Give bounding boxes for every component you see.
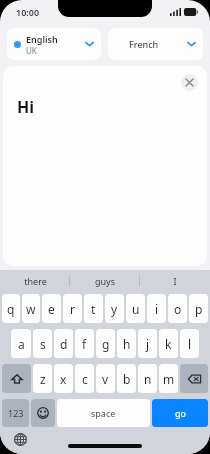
staticText: s	[40, 336, 46, 352]
button[interactable]: v	[96, 364, 115, 393]
staticText: k	[165, 336, 172, 352]
staticText: there	[24, 275, 47, 287]
button[interactable]: r	[63, 294, 82, 323]
staticText: v	[102, 371, 109, 387]
staticText: 10:00	[16, 6, 40, 18]
staticText: English	[26, 33, 58, 45]
staticText: g	[102, 336, 110, 352]
button[interactable]: English	[7, 28, 101, 60]
button[interactable]: i	[147, 294, 166, 323]
staticText: x	[60, 371, 67, 387]
staticText: a	[18, 336, 25, 352]
staticText: q	[7, 301, 15, 317]
staticText: c	[82, 371, 88, 387]
button[interactable]: French	[108, 28, 203, 60]
button[interactable]: w	[22, 294, 40, 323]
button[interactable]: n	[138, 364, 157, 393]
button[interactable]: I	[140, 270, 210, 291]
staticText: e	[48, 301, 55, 317]
staticText: l	[188, 336, 192, 352]
staticText: w	[26, 301, 36, 317]
staticText: n	[144, 371, 152, 387]
button[interactable]: z	[33, 364, 52, 393]
button[interactable]: g	[96, 329, 115, 358]
staticText: go	[175, 407, 186, 419]
button[interactable]: b	[117, 364, 136, 393]
staticText: z	[40, 371, 46, 387]
staticText: j	[146, 336, 150, 352]
staticText: p	[195, 301, 203, 317]
staticText: guys	[95, 275, 115, 287]
button[interactable]: space	[57, 399, 150, 427]
button[interactable]: u	[126, 294, 145, 323]
staticText: t	[91, 301, 96, 317]
staticText: u	[132, 301, 140, 317]
button[interactable]: Close	[181, 74, 198, 91]
staticText: French	[129, 38, 159, 50]
button[interactable]: Backspace	[180, 364, 208, 393]
button[interactable]: x	[54, 364, 73, 393]
button[interactable]: go	[152, 399, 208, 427]
button[interactable]: Emoji	[31, 399, 55, 427]
button[interactable]: k	[159, 329, 178, 358]
button[interactable]: c	[75, 364, 94, 393]
staticText: Hi	[17, 96, 35, 118]
staticText: space	[91, 407, 116, 419]
staticText: UK	[26, 45, 37, 56]
button[interactable]: j	[138, 329, 157, 358]
button[interactable]: e	[42, 294, 61, 323]
staticText: h	[123, 336, 131, 352]
staticText: m	[163, 371, 175, 387]
staticText: o	[174, 301, 182, 317]
button[interactable]: Shift	[2, 364, 31, 393]
button[interactable]: d	[54, 329, 73, 358]
button[interactable]: guys	[70, 270, 140, 291]
button[interactable]: h	[117, 329, 136, 358]
staticText: 123	[8, 407, 24, 419]
button[interactable]: Change keyboard language	[9, 428, 31, 450]
staticText: y	[111, 301, 118, 317]
button[interactable]: y	[105, 294, 124, 323]
staticText: d	[60, 336, 68, 352]
button[interactable]: t	[84, 294, 103, 323]
button[interactable]: a	[11, 329, 31, 358]
button[interactable]: p	[189, 294, 208, 323]
button[interactable]: there	[0, 270, 70, 291]
button[interactable]: o	[168, 294, 187, 323]
staticText: b	[123, 371, 131, 387]
button[interactable]: f	[75, 329, 94, 358]
button[interactable]: m	[159, 364, 178, 393]
staticText: I	[173, 275, 177, 287]
staticText: f	[82, 336, 87, 352]
staticText: r	[70, 301, 75, 317]
button[interactable]: s	[33, 329, 52, 358]
button[interactable]: 123	[2, 399, 29, 427]
button[interactable]: q	[2, 294, 20, 323]
button[interactable]: l	[180, 329, 199, 358]
staticText: i	[155, 301, 159, 317]
